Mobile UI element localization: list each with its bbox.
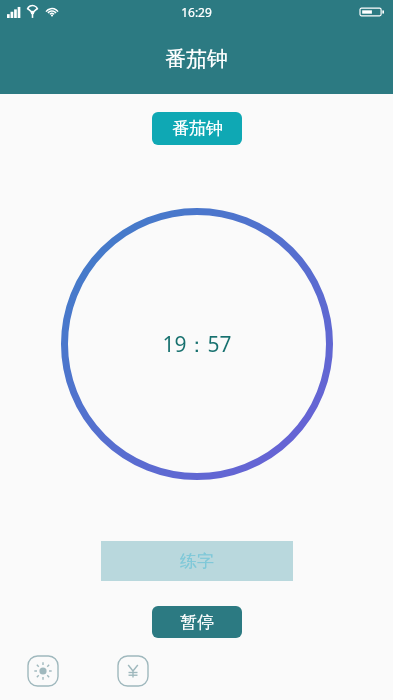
button[interactable]: 暂停: [152, 606, 242, 638]
button[interactable]: Currency: [118, 656, 148, 686]
staticText: 番茄钟: [172, 118, 223, 139]
staticText: 19：57: [162, 330, 232, 359]
staticText: 番茄钟: [165, 46, 228, 72]
staticText: 暂停: [180, 612, 214, 633]
staticText: 16:29: [181, 4, 212, 20]
staticText: 练字: [180, 551, 214, 572]
button[interactable]: 练字: [101, 541, 293, 581]
button[interactable]: 番茄钟: [152, 112, 242, 145]
button[interactable]: Brightness: [28, 656, 58, 686]
